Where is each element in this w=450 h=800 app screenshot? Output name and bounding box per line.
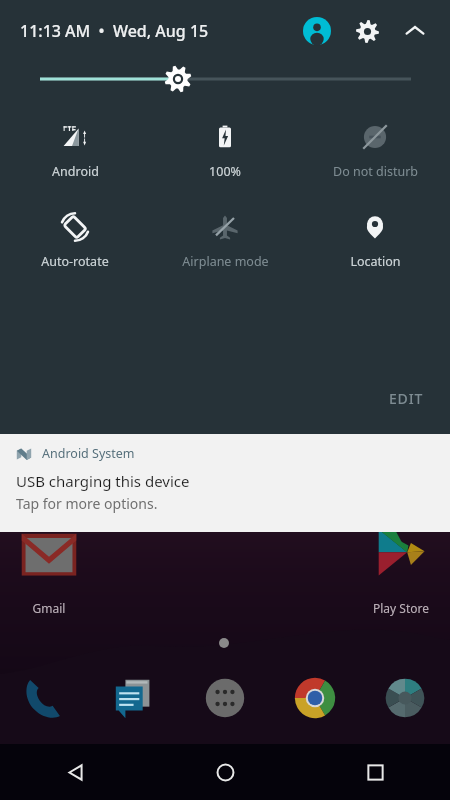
button[interactable]: Apps xyxy=(180,668,270,728)
button[interactable]: Camera xyxy=(360,668,450,728)
button[interactable]: Airplane mode xyxy=(150,210,300,272)
button[interactable]: Phone xyxy=(0,668,90,728)
button[interactable]: Recents xyxy=(300,744,450,800)
staticText: USB charging this device xyxy=(16,471,190,491)
button[interactable]: Android xyxy=(0,120,150,182)
staticText: Android System xyxy=(42,445,135,462)
button[interactable]: Android System xyxy=(0,434,450,532)
button[interactable]: Back xyxy=(0,744,150,800)
staticText: 11:13 AM • Wed, Aug 15 xyxy=(20,20,209,42)
button[interactable]: Gmail xyxy=(18,528,80,586)
button[interactable]: Do not disturb xyxy=(300,120,450,182)
button[interactable]: Brightness xyxy=(0,66,450,92)
button[interactable]: Location xyxy=(300,210,450,272)
button[interactable]: Auto-rotate xyxy=(0,210,150,272)
staticText: Location xyxy=(350,253,401,270)
button[interactable]: Home xyxy=(150,744,300,800)
button[interactable]: 100% xyxy=(150,120,300,182)
button[interactable]: EDIT xyxy=(385,385,428,412)
staticText: 100% xyxy=(209,163,241,180)
staticText: Tap for more options. xyxy=(16,494,158,513)
button[interactable]: User profile xyxy=(300,14,334,48)
button[interactable]: Settings xyxy=(350,14,384,48)
staticText: Play Store xyxy=(358,600,444,616)
button[interactable]: Chrome xyxy=(270,668,360,728)
staticText: EDIT xyxy=(389,389,424,408)
staticText: Android xyxy=(52,163,99,180)
button[interactable]: Play Store xyxy=(370,528,432,586)
staticText: Do not disturb xyxy=(333,163,418,180)
button[interactable]: Collapse xyxy=(398,14,432,48)
staticText: Auto-rotate xyxy=(41,253,109,270)
staticText: Gmail xyxy=(18,600,80,616)
button[interactable]: Messages xyxy=(90,668,180,728)
staticText: Airplane mode xyxy=(182,253,269,270)
